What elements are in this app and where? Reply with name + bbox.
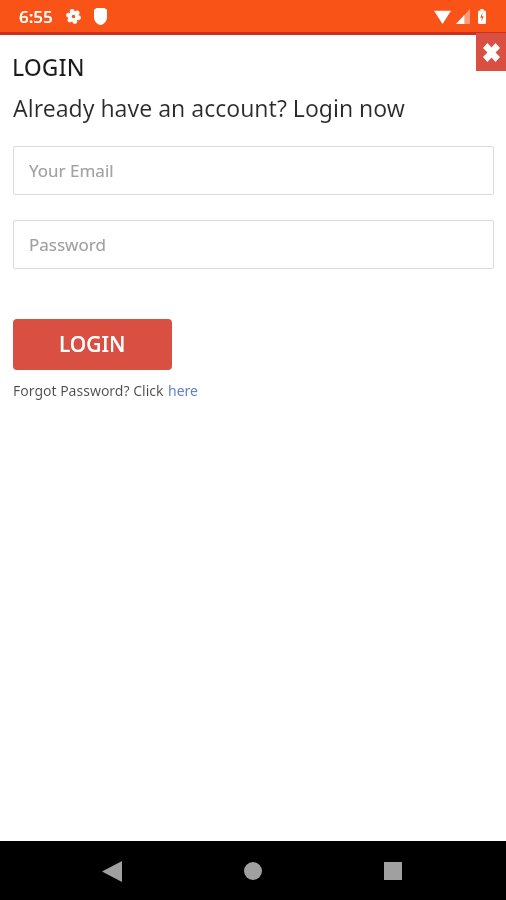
button[interactable]: here (168, 381, 198, 400)
button[interactable]: Close (476, 33, 506, 71)
staticText: LOGIN (59, 330, 126, 359)
staticText: Your Email (29, 159, 114, 182)
staticText: 6:55 (19, 5, 53, 28)
staticText: LOGIN (12, 51, 85, 82)
button[interactable]: Password (13, 220, 494, 269)
button[interactable]: Back (90, 849, 134, 893)
button[interactable]: Recents (371, 849, 415, 893)
button[interactable]: LOGIN (13, 319, 172, 370)
button[interactable]: Your Email (13, 146, 494, 195)
button[interactable]: Home (231, 849, 275, 893)
staticText: Already have an account? Login now (13, 92, 405, 123)
staticText: Forgot Password? Click (13, 381, 168, 400)
staticText: Password (29, 233, 106, 256)
